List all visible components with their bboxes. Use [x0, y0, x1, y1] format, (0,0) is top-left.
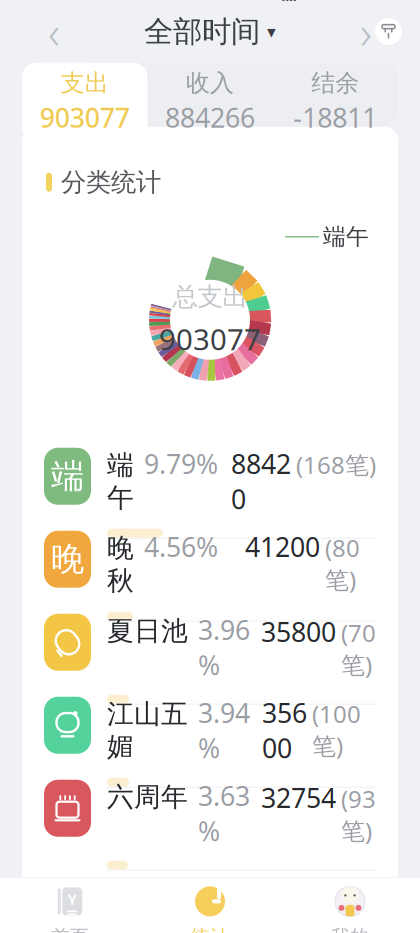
- staticText: 支出: [61, 68, 109, 98]
- staticText: 3.63%: [198, 778, 250, 849]
- staticText: 收入: [186, 68, 234, 98]
- staticText: -18811: [293, 100, 377, 135]
- staticText: ‹: [48, 1, 60, 62]
- staticText: 首页: [51, 925, 89, 933]
- staticText: 端午: [323, 223, 369, 251]
- staticText: 全部时间: [144, 14, 260, 50]
- staticText: 903077: [159, 319, 261, 358]
- staticText: 32754: [261, 780, 336, 815]
- staticText: ›: [360, 1, 372, 62]
- staticText: (93笔): [341, 783, 376, 846]
- staticText: (168笔): [296, 449, 376, 481]
- staticText: (80笔): [325, 532, 360, 595]
- staticText: 4.56%: [144, 529, 218, 564]
- staticText: 总支出: [172, 281, 247, 312]
- button[interactable]: 统计: [140, 886, 280, 933]
- button[interactable]: 端: [44, 448, 376, 531]
- button[interactable]: 六周年: [44, 780, 376, 863]
- staticText: 41200: [245, 529, 320, 564]
- button[interactable]: 下一期: [338, 4, 394, 60]
- staticText: ▾: [267, 22, 276, 41]
- staticText: 分类统计: [61, 167, 161, 198]
- button[interactable]: Y: [0, 886, 140, 933]
- staticText: 88420: [231, 446, 291, 517]
- button[interactable]: 收入: [147, 70, 273, 134]
- staticText: (100笔): [312, 698, 361, 761]
- staticText: 3.94%: [198, 695, 250, 766]
- staticText: 统计: [191, 925, 229, 933]
- staticText: (70笔): [341, 617, 376, 680]
- button[interactable]: 结余: [273, 70, 398, 134]
- button[interactable]: 江山五媚: [44, 697, 376, 780]
- staticText: 我的: [331, 925, 369, 933]
- staticText: 端午: [107, 449, 134, 514]
- staticText: 35600: [262, 695, 307, 766]
- staticText: 9.79%: [144, 446, 218, 481]
- button[interactable]: 夏日池: [44, 614, 376, 697]
- staticText: 六周年: [107, 781, 188, 813]
- staticText: 江山五媚: [107, 698, 188, 763]
- staticText: 晚秋: [107, 532, 134, 597]
- staticText: 端: [51, 456, 84, 497]
- staticText: 35800: [261, 614, 336, 649]
- staticText: 3.96%: [198, 612, 250, 683]
- staticText: Y: [67, 889, 76, 909]
- staticText: 夏日池: [107, 615, 188, 647]
- button[interactable]: 全部时间: [144, 4, 276, 60]
- button[interactable]: 筛选: [375, 18, 402, 45]
- button[interactable]: 我的: [280, 886, 420, 933]
- staticText: 晚: [51, 539, 84, 580]
- staticText: 884266: [165, 100, 255, 135]
- button[interactable]: 上一期: [26, 4, 82, 60]
- staticText: 结余: [311, 68, 359, 98]
- button[interactable]: 支出: [22, 63, 147, 141]
- button[interactable]: 晚: [44, 531, 376, 614]
- staticText: 903077: [40, 100, 130, 135]
